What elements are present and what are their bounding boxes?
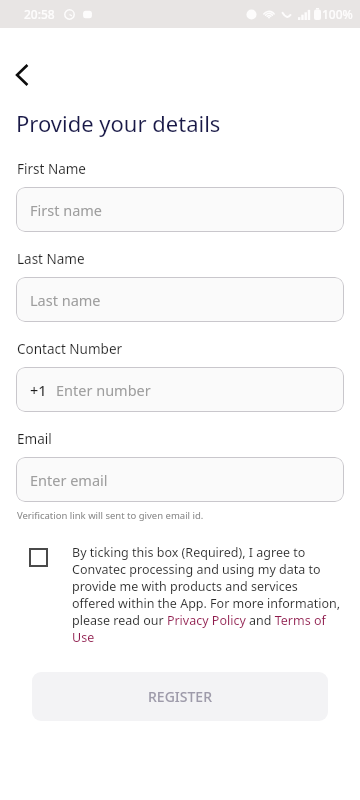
button[interactable]: +1 xyxy=(16,367,344,412)
other: Agree to terms checkbox xyxy=(29,548,48,567)
staticText: By ticking this box (Required), I agree … xyxy=(72,544,342,646)
staticText: Contact Number xyxy=(17,340,123,358)
staticText: Enter number xyxy=(56,380,151,400)
staticText: REGISTER xyxy=(148,687,212,706)
staticText: 100% xyxy=(322,6,353,22)
staticText: First name xyxy=(30,200,103,220)
button[interactable]: First name xyxy=(16,187,344,232)
staticText: Provide your details xyxy=(16,108,221,138)
staticText: Last name xyxy=(30,290,101,310)
button[interactable]: Agree to terms checkbox xyxy=(29,544,342,646)
button[interactable]: REGISTER xyxy=(32,672,328,721)
button[interactable]: Back xyxy=(3,56,41,94)
staticText: Last Name xyxy=(17,250,85,268)
staticText: Email xyxy=(17,430,52,448)
staticText: +1 xyxy=(30,380,47,400)
staticText: First Name xyxy=(17,160,86,178)
staticText: 20:58 xyxy=(24,6,55,22)
button[interactable]: Enter email xyxy=(16,457,344,502)
button[interactable]: Last name xyxy=(16,277,344,322)
staticText: Verification link will sent to given ema… xyxy=(17,509,204,522)
staticText: Enter email xyxy=(30,470,108,490)
